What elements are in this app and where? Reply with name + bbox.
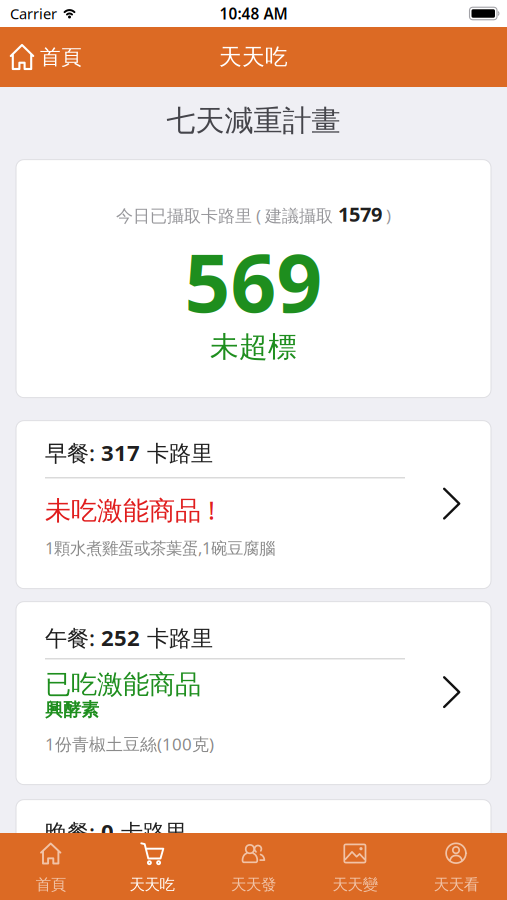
staticText: Carrier: [10, 4, 57, 23]
staticText: 今日已攝取卡路里 ( 建議攝取: [116, 204, 338, 227]
staticText: 未超標: [210, 329, 297, 365]
staticText: 未吃激能商品 !: [45, 492, 215, 527]
staticText: [45, 857, 51, 886]
staticText: 晚餐:: [45, 817, 101, 846]
staticText: 10:48 AM: [219, 3, 287, 24]
staticText: 1份青椒土豆絲(100克): [45, 733, 214, 755]
staticText: 252: [101, 623, 140, 652]
button[interactable]: 早餐:: [16, 421, 491, 589]
button[interactable]: 首頁: [0, 833, 101, 900]
button[interactable]: 晚餐:: [16, 800, 491, 900]
staticText: 天天變: [332, 875, 377, 894]
staticText: 卡路里: [114, 819, 187, 846]
staticText: 天天吃: [219, 43, 288, 71]
button[interactable]: 首頁: [10, 44, 82, 70]
staticText: 首頁: [36, 875, 66, 894]
staticText: 早餐:: [45, 438, 101, 467]
button[interactable]: 天天吃: [101, 833, 203, 900]
button[interactable]: 天天看: [406, 833, 507, 900]
staticText: 卡路里: [140, 625, 213, 652]
staticText: 0: [101, 817, 114, 846]
staticText: 1顆水煮雞蛋或茶葉蛋,1碗豆腐腦: [45, 537, 275, 559]
staticText: 午餐:: [45, 623, 101, 652]
staticText: 已吃激能商品: [45, 668, 201, 701]
button[interactable]: 天天發: [203, 833, 304, 900]
staticText: 天天發: [231, 875, 276, 894]
staticText: 卡路里: [140, 440, 213, 467]
staticText: ): [382, 204, 391, 226]
staticText: 七天減重計畫: [166, 103, 340, 139]
staticText: 317: [101, 438, 140, 467]
button[interactable]: 午餐:: [16, 602, 491, 785]
staticText: 首頁: [40, 44, 82, 70]
staticText: 興酵素: [45, 699, 99, 721]
staticText: 天天看: [434, 875, 479, 894]
button[interactable]: 天天變: [304, 833, 406, 900]
staticText: 1579: [338, 201, 382, 227]
staticText: 天天吃: [130, 875, 175, 894]
staticText: 569: [184, 228, 322, 334]
